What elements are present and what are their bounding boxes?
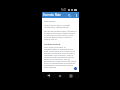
staticText: Instructions <box>44 20 56 23</box>
button[interactable]: Search <box>67 13 71 17</box>
button[interactable]: Back <box>46 73 51 78</box>
staticText: Lorem ipsum dolor sit amet, consectetur … <box>44 24 77 29</box>
button[interactable]: Home <box>57 73 62 78</box>
button[interactable]: More options <box>74 13 78 17</box>
staticText: Evernote Note <box>43 13 61 17</box>
button[interactable]: Recents <box>68 73 73 78</box>
staticText: Getting started <box>44 43 61 46</box>
button[interactable]: Evernote Note <box>43 13 61 17</box>
staticText: 9:41 <box>61 8 67 12</box>
staticText: Duis aute irure dolor in reprehenderit i… <box>44 46 77 69</box>
staticText: Sed do eiusmod tempor incididunt ut labo… <box>44 30 77 41</box>
button[interactable]: New note <box>74 67 77 70</box>
